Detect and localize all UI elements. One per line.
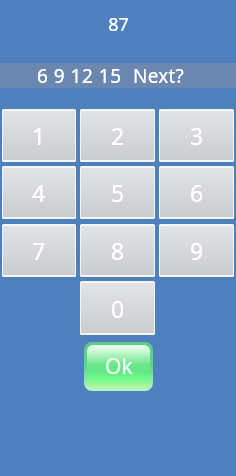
staticText: Ok bbox=[105, 352, 133, 381]
button[interactable]: Ok bbox=[84, 342, 153, 391]
staticText: 7 bbox=[32, 235, 46, 266]
button[interactable]: 2 bbox=[80, 109, 155, 162]
staticText: 1 bbox=[32, 120, 46, 151]
button[interactable]: 9 bbox=[159, 224, 234, 277]
staticText: 8 bbox=[111, 235, 125, 266]
staticText: 6 bbox=[190, 177, 204, 208]
staticText: 2 bbox=[111, 120, 125, 151]
staticText: 87 bbox=[108, 12, 129, 37]
staticText: 0 bbox=[111, 293, 125, 324]
button[interactable]: 1 bbox=[2, 109, 76, 162]
button[interactable]: 7 bbox=[2, 224, 76, 277]
button[interactable]: 6 bbox=[159, 166, 234, 219]
staticText: 5 bbox=[111, 177, 125, 208]
button[interactable]: 3 bbox=[159, 109, 234, 162]
staticText: 4 bbox=[32, 177, 46, 208]
button[interactable]: 5 bbox=[80, 166, 155, 219]
staticText: 3 bbox=[190, 120, 204, 151]
staticText: 9 bbox=[190, 235, 204, 266]
button[interactable]: 4 bbox=[2, 166, 76, 219]
staticText: 6 9 12 15 bbox=[37, 63, 122, 88]
staticText: Next? bbox=[133, 63, 184, 88]
button[interactable]: 8 bbox=[80, 224, 155, 277]
button[interactable]: 0 bbox=[80, 281, 155, 335]
